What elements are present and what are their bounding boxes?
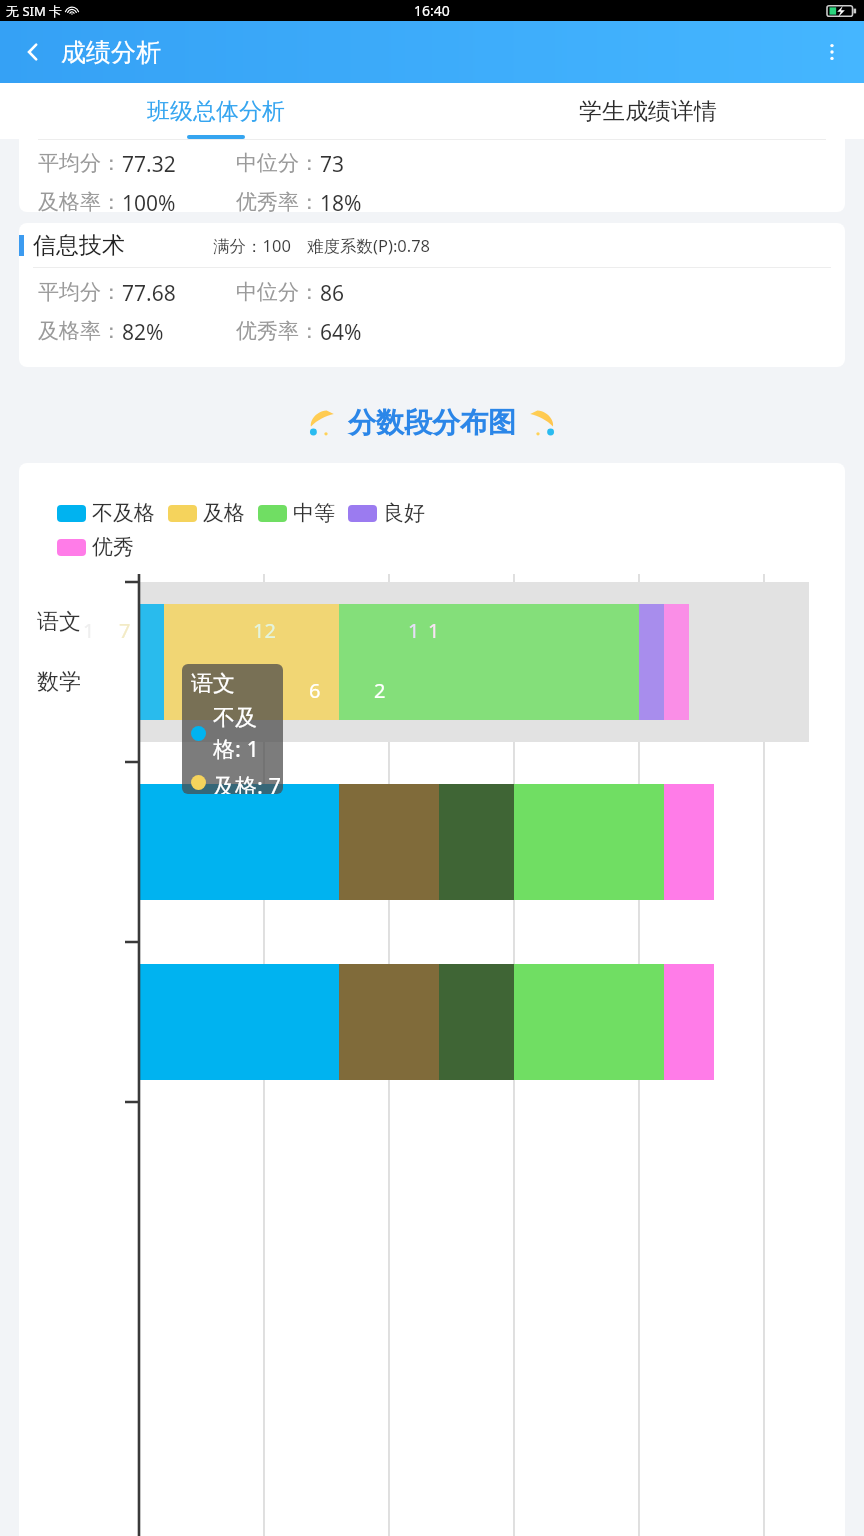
staticText: 及格: 7 — [213, 770, 282, 794]
staticText: 7 — [119, 617, 131, 644]
staticText: 语文 — [191, 670, 235, 698]
staticText: 1 — [83, 617, 95, 644]
staticText: 不及格: 1 — [213, 704, 283, 763]
staticText: 64% — [320, 318, 362, 347]
staticText: 77.68 — [122, 279, 176, 308]
staticText: 数学 — [37, 668, 81, 696]
staticText: 100% — [122, 189, 176, 212]
staticText: 82% — [122, 318, 164, 347]
staticText: 优秀率： — [236, 318, 320, 344]
button[interactable]: 信息技术 — [19, 223, 845, 367]
staticText: 86 — [320, 279, 345, 308]
staticText: 中位分： — [236, 150, 320, 176]
staticText: 分数段分布图 — [348, 405, 516, 440]
staticText: 1 — [408, 617, 420, 644]
staticText: 平均分： — [38, 279, 122, 305]
staticText: 班级总体分析 — [147, 97, 285, 126]
staticText: 语文 — [37, 608, 81, 636]
staticText: 及格率： — [38, 318, 122, 344]
staticText: 73 — [320, 150, 345, 179]
staticText: 2 — [374, 677, 386, 704]
staticText: 及格率： — [38, 189, 122, 212]
staticText: 中等 — [293, 500, 335, 526]
staticText: 77.32 — [122, 150, 176, 179]
staticText: 平均分： — [38, 150, 122, 176]
button[interactable]: 平均分： — [19, 139, 845, 212]
staticText: 18% — [320, 189, 362, 212]
staticText: 16:40 — [414, 1, 450, 20]
staticText: 优秀率： — [236, 189, 320, 212]
staticText: 优秀 — [92, 534, 134, 560]
button[interactable]: 学生成绩详情 — [432, 83, 864, 139]
staticText: 满分：100 — [213, 234, 291, 257]
staticText: 无 SIM 卡 — [6, 2, 63, 20]
button[interactable]: Back — [12, 31, 54, 73]
staticText: 不及格 — [92, 500, 155, 526]
staticText: 12 — [253, 617, 276, 644]
button[interactable]: 班级总体分析 — [0, 83, 432, 139]
staticText: 6 — [309, 677, 321, 704]
staticText: 良好 — [383, 500, 425, 526]
button[interactable]: More options — [810, 30, 854, 74]
staticText: 成绩分析 — [61, 37, 161, 68]
staticText: 及格 — [203, 500, 245, 526]
staticText: 中位分： — [236, 279, 320, 305]
staticText: 学生成绩详情 — [579, 97, 717, 126]
staticText: 信息技术 — [33, 231, 125, 260]
staticText: 1 — [428, 617, 440, 644]
staticText: 难度系数(P):0.78 — [307, 234, 431, 257]
